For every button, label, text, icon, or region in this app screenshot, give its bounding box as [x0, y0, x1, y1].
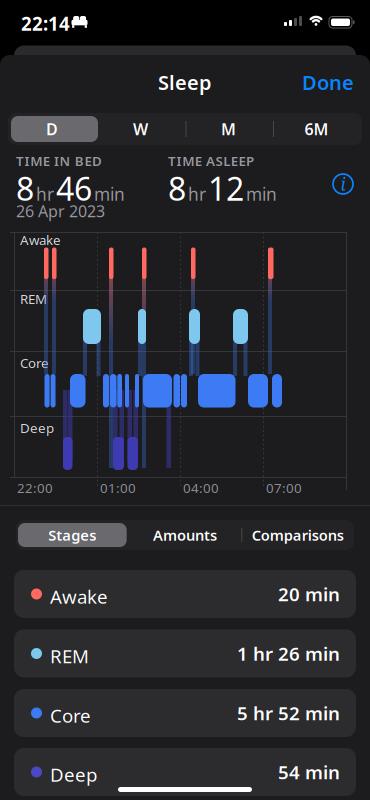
staticText: REM: [20, 290, 47, 308]
staticText: D: [46, 118, 58, 140]
staticText: Comparisons: [252, 525, 344, 545]
staticText: hr: [36, 182, 54, 205]
staticText: 46: [56, 167, 92, 209]
staticText: min: [94, 182, 125, 205]
staticText: Stages: [48, 525, 96, 545]
staticText: Amounts: [153, 525, 217, 545]
button[interactable]: Amounts: [129, 520, 241, 550]
staticText: REM: [50, 643, 89, 668]
staticText: TIME ASLEEP: [168, 152, 254, 170]
staticText: hr: [188, 182, 206, 205]
staticText: Done: [302, 69, 354, 96]
staticText: 04:00: [183, 479, 219, 497]
button[interactable]: W: [96, 113, 184, 145]
staticText: 6M: [304, 118, 328, 140]
staticText: 1 hr 26 min: [237, 641, 340, 666]
button[interactable]: Awake: [14, 570, 356, 618]
staticText: 54 min: [278, 760, 340, 784]
button[interactable]: M: [184, 113, 272, 145]
staticText: 8: [16, 167, 34, 209]
staticText: 12: [208, 167, 244, 209]
button[interactable]: Stages: [16, 520, 129, 550]
staticText: min: [246, 182, 277, 205]
staticText: 8: [168, 167, 186, 209]
button[interactable]: i: [332, 173, 354, 195]
staticText: 07:00: [266, 479, 302, 497]
button[interactable]: Core: [14, 689, 356, 737]
staticText: Awake: [20, 231, 61, 249]
staticText: Deep: [50, 762, 97, 787]
staticText: 22:00: [17, 479, 53, 497]
staticText: M: [221, 118, 236, 140]
staticText: 26 Apr 2023: [16, 200, 105, 222]
staticText: i: [340, 172, 345, 196]
staticText: Core: [20, 354, 49, 372]
staticText: Core: [50, 703, 91, 728]
staticText: Deep: [20, 419, 54, 437]
button[interactable]: Done: [302, 69, 354, 96]
staticText: 22:14: [21, 11, 70, 36]
button[interactable]: D: [8, 113, 96, 145]
staticText: TIME IN BED: [16, 152, 102, 170]
button[interactable]: Deep: [14, 748, 356, 796]
staticText: 5 hr 52 min: [237, 701, 340, 725]
staticText: W: [133, 118, 148, 140]
button[interactable]: 6M: [272, 113, 360, 145]
staticText: Awake: [50, 584, 108, 609]
staticText: Sleep: [158, 69, 212, 96]
button[interactable]: REM: [14, 629, 356, 677]
button[interactable]: Comparisons: [241, 520, 354, 550]
staticText: 20 min: [278, 582, 340, 606]
staticText: 01:00: [100, 479, 136, 497]
